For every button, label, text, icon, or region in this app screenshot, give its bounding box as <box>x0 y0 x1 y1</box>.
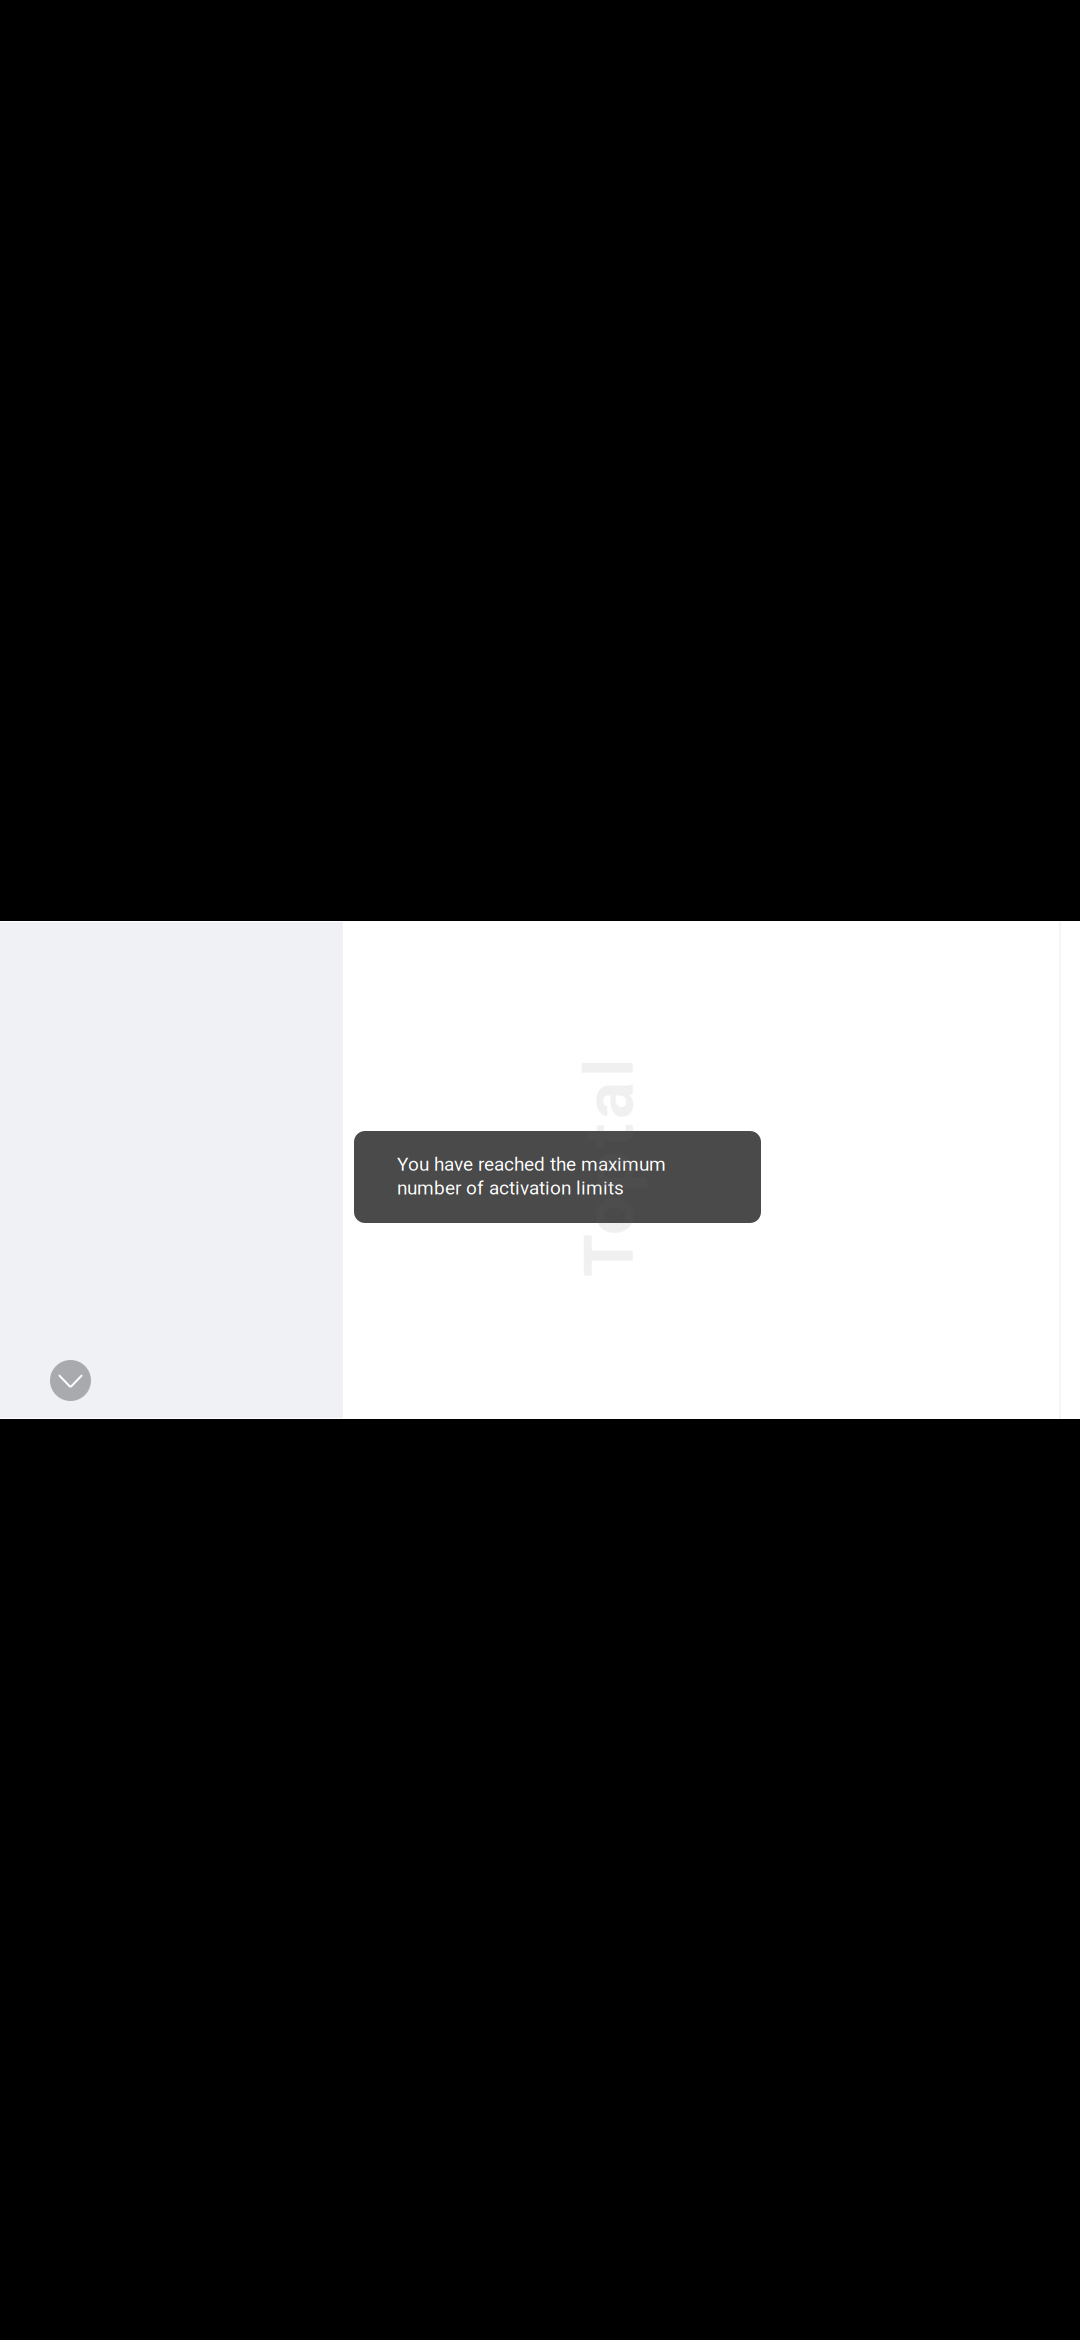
staticText: You have reached the maximum number of a… <box>397 1153 666 1199</box>
staticText: Toptal <box>500 1127 718 1209</box>
button[interactable]: Collapse panel <box>50 1360 91 1401</box>
